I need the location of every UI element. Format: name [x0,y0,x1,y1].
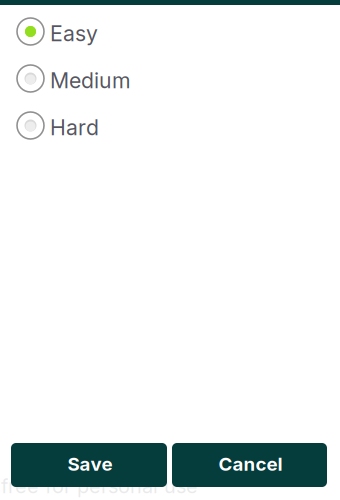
staticText: Medium [50,68,131,93]
button[interactable]: Hard [0,102,340,149]
button[interactable]: Medium [0,55,340,102]
button[interactable]: Easy [0,8,340,55]
button[interactable]: Save [11,443,167,487]
staticText: Easy [50,21,98,46]
button[interactable]: Cancel [172,443,327,487]
staticText: Save [67,453,112,475]
staticText: Hard [50,115,99,140]
staticText: free for personal use [1,474,198,498]
staticText: Cancel [218,453,282,475]
